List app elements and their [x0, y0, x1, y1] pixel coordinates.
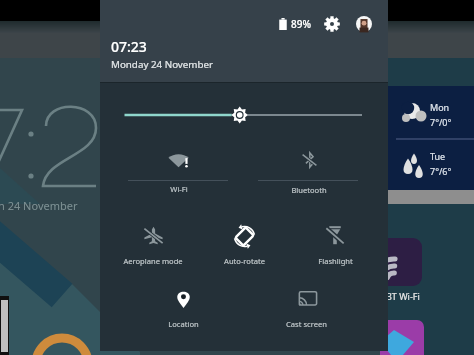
- staticText: Monday 24 November: [111, 58, 214, 71]
- staticText: Mon: [430, 101, 450, 113]
- staticText: 7°/0°: [430, 116, 452, 128]
- button[interactable]: Aeroplane mode: [103, 211, 203, 267]
- staticText: 07:23: [111, 37, 147, 56]
- staticText: 7°/6°: [430, 165, 452, 177]
- staticText: Bluetooth: [291, 185, 327, 195]
- staticText: Tue: [430, 150, 446, 162]
- staticText: 89%: [291, 17, 311, 31]
- staticText: Cast screen: [286, 319, 327, 329]
- button[interactable]: Cast screen: [256, 275, 356, 331]
- button[interactable]: Wi-Fi: [129, 136, 229, 192]
- button[interactable]: User profile: [354, 14, 374, 34]
- button[interactable]: Settings: [322, 14, 342, 34]
- button[interactable]: Bluetooth: [259, 136, 359, 192]
- staticText: Aeroplane mode: [123, 256, 183, 266]
- button[interactable]: Auto-rotate: [194, 212, 294, 268]
- staticText: BT Wi-Fi: [386, 290, 420, 302]
- staticText: Flashlight: [318, 256, 353, 266]
- staticText: n 24 November: [0, 198, 78, 213]
- button[interactable]: Brightness: [100, 96, 388, 134]
- staticText: Location: [168, 319, 199, 329]
- button[interactable]: Flashlight: [285, 211, 385, 267]
- button[interactable]: Location: [133, 275, 233, 331]
- staticText: Auto-rotate: [224, 256, 265, 266]
- staticText: Wi-Fi: [170, 184, 188, 194]
